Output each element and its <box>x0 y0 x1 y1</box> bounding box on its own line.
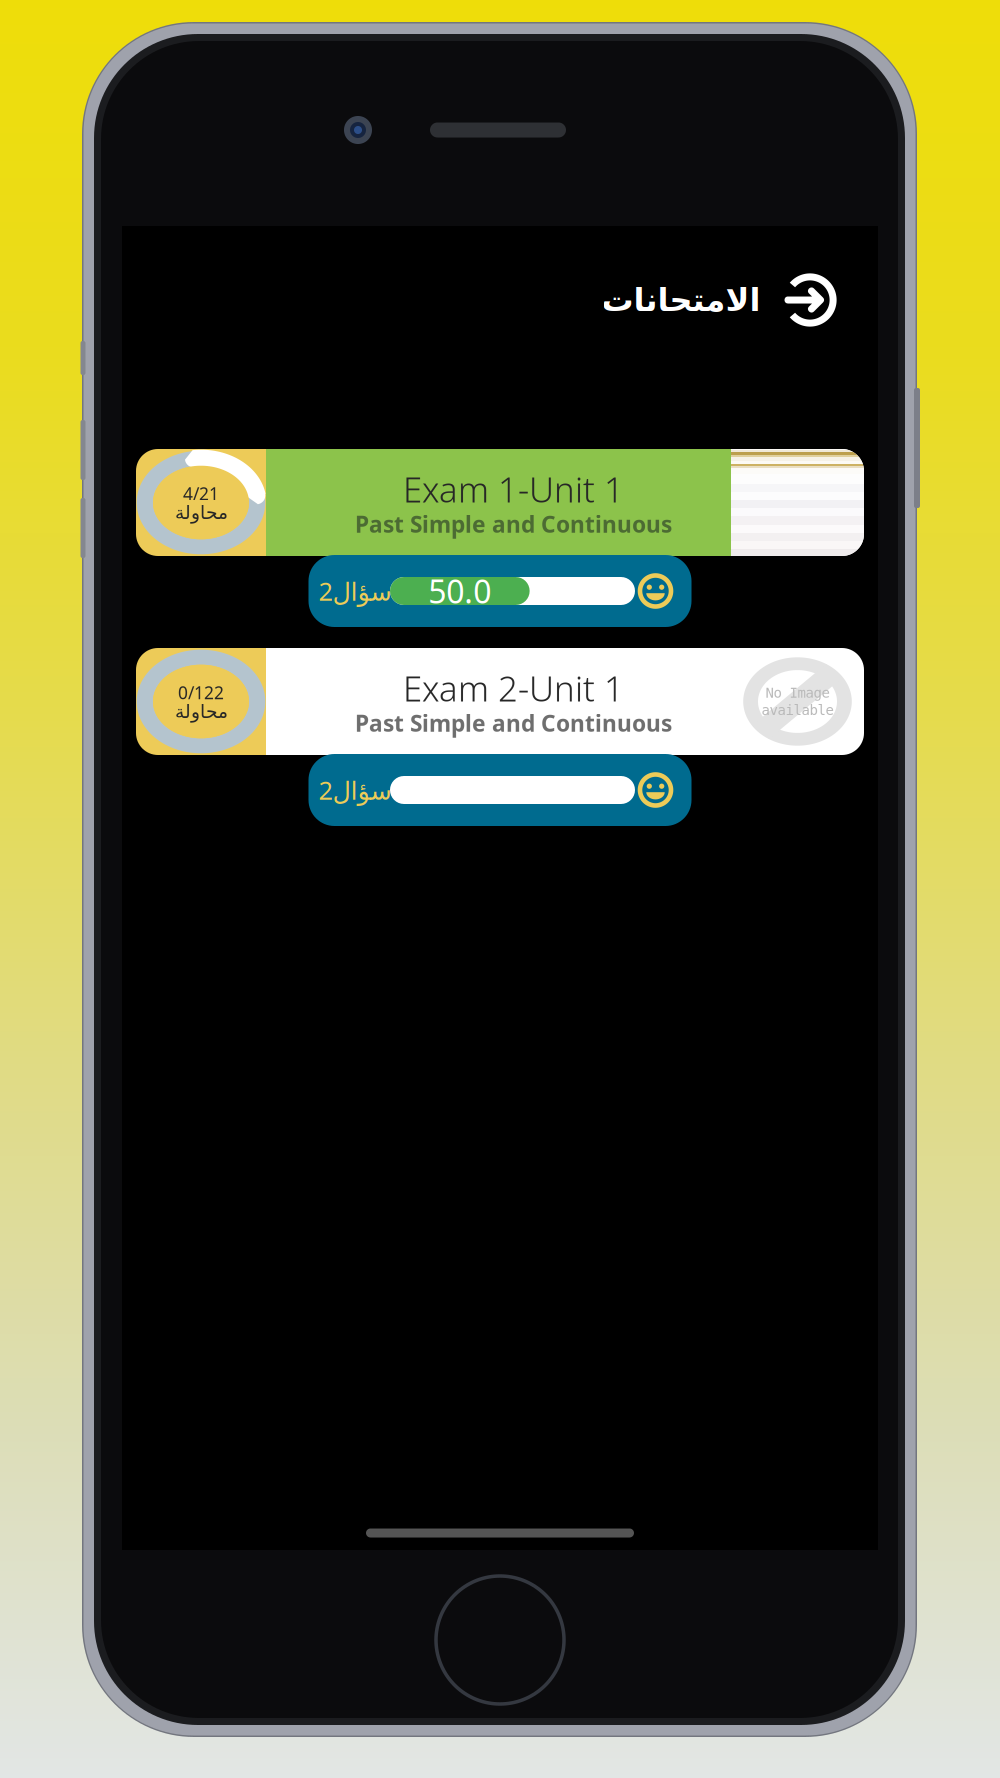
staticText: Past Simple and Continuous <box>355 708 672 738</box>
staticText: Past Simple and Continuous <box>355 509 672 539</box>
button[interactable]: 0/122 <box>136 648 864 755</box>
staticText: No Image <box>765 685 829 701</box>
staticText: سؤال2 <box>318 773 391 807</box>
button[interactable]: 4/21 <box>136 449 864 556</box>
staticText: 4/21 <box>183 482 219 505</box>
button[interactable]: الامتحانات <box>578 258 850 342</box>
staticText: 0/122 <box>178 681 224 704</box>
staticText: 50.0 <box>428 570 491 612</box>
staticText: الامتحانات <box>601 282 760 318</box>
staticText: Exam 2-Unit 1 <box>403 665 624 711</box>
staticText: محاولة <box>174 502 227 523</box>
staticText: سؤال2 <box>318 574 391 608</box>
staticText: Exam 1-Unit 1 <box>403 466 624 512</box>
staticText: available <box>761 702 833 718</box>
staticText: محاولة <box>174 701 227 722</box>
